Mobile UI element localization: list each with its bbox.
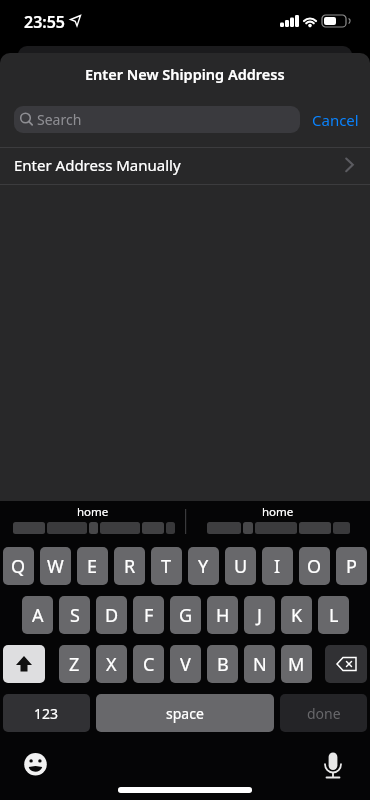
staticText: A: [32, 603, 44, 628]
button[interactable]: space: [96, 694, 274, 732]
staticText: O: [307, 554, 322, 579]
staticText: H: [216, 603, 230, 628]
staticText: X: [106, 652, 117, 677]
staticText: M: [288, 652, 305, 677]
button[interactable]: H: [207, 596, 238, 634]
button[interactable]: done: [280, 694, 367, 732]
button[interactable]: [317, 746, 349, 782]
staticText: K: [291, 603, 303, 628]
button[interactable]: 123: [3, 694, 90, 732]
staticText: Z: [69, 652, 80, 677]
button[interactable]: Cancel: [306, 106, 364, 133]
button[interactable]: R: [114, 547, 145, 585]
button[interactable]: Enter Address Manually: [0, 147, 370, 183]
button[interactable]: E: [77, 547, 108, 585]
button[interactable]: C: [133, 645, 164, 683]
staticText: G: [179, 603, 193, 628]
staticText: E: [87, 554, 98, 579]
button[interactable]: home: [185, 504, 370, 541]
staticText: N: [253, 652, 267, 677]
staticText: L: [329, 603, 339, 628]
button[interactable]: M: [281, 645, 312, 683]
staticText: home: [77, 504, 109, 520]
button[interactable]: Y: [188, 547, 219, 585]
button[interactable]: L: [318, 596, 349, 634]
staticText: F: [144, 603, 154, 628]
staticText: B: [217, 652, 229, 677]
staticText: V: [180, 652, 191, 677]
staticText: Search: [37, 110, 82, 129]
button[interactable]: B: [207, 645, 238, 683]
staticText: C: [143, 652, 155, 677]
button[interactable]: V: [170, 645, 201, 683]
button[interactable]: K: [281, 596, 312, 634]
button[interactable]: I: [262, 547, 293, 585]
staticText: 123: [34, 704, 59, 723]
button[interactable]: P: [336, 547, 367, 585]
button[interactable]: [20, 749, 52, 781]
button[interactable]: S: [59, 596, 90, 634]
button[interactable]: home: [0, 504, 185, 541]
staticText: P: [346, 554, 357, 579]
staticText: home: [262, 504, 294, 520]
staticText: Q: [11, 554, 26, 579]
staticText: space: [166, 704, 204, 723]
staticText: I: [274, 554, 281, 579]
button[interactable]: T: [151, 547, 182, 585]
button[interactable]: O: [299, 547, 330, 585]
staticText: S: [70, 603, 80, 628]
staticText: U: [234, 554, 248, 579]
button[interactable]: Search: [14, 106, 300, 133]
button[interactable]: [325, 645, 367, 683]
button[interactable]: F: [133, 596, 164, 634]
button[interactable]: G: [170, 596, 201, 634]
staticText: done: [307, 704, 341, 723]
staticText: T: [161, 554, 172, 579]
staticText: Y: [198, 554, 209, 579]
button[interactable]: J: [244, 596, 275, 634]
staticText: J: [257, 603, 262, 628]
staticText: Cancel: [312, 110, 359, 130]
staticText: Enter New Shipping Address: [85, 64, 285, 84]
button[interactable]: D: [96, 596, 127, 634]
button[interactable]: Q: [3, 547, 34, 585]
staticText: R: [124, 554, 136, 579]
staticText: Enter Address Manually: [14, 155, 181, 175]
staticText: W: [47, 554, 64, 579]
button[interactable]: U: [225, 547, 256, 585]
button[interactable]: [3, 645, 45, 683]
staticText: D: [105, 603, 119, 628]
button[interactable]: W: [40, 547, 71, 585]
button[interactable]: N: [244, 645, 275, 683]
button[interactable]: Z: [59, 645, 90, 683]
button[interactable]: X: [96, 645, 127, 683]
button[interactable]: A: [22, 596, 53, 634]
staticText: 23:55: [24, 11, 66, 33]
